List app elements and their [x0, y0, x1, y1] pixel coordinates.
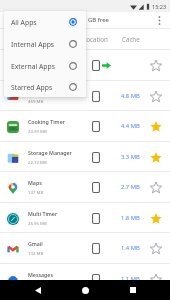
button[interactable]: Starred Apps [4, 77, 86, 97]
button[interactable]: All Apps [4, 11, 86, 33]
staticText: Maps [28, 179, 42, 186]
staticText: 2.7 MB [121, 183, 140, 191]
staticText: Internal Apps [11, 40, 55, 49]
staticText: Gmail [28, 240, 43, 247]
staticText: 137 MB [28, 189, 44, 195]
button[interactable]: Dark Photos [0, 81, 170, 111]
staticText: 1.1 MB [121, 275, 140, 283]
staticText: 3.3 MB [121, 153, 140, 161]
staticText: 12.82 GB free [71, 16, 109, 24]
staticText: 132 MB [28, 250, 44, 256]
staticText: External Apps [11, 62, 55, 71]
button[interactable]: Gmail [0, 233, 170, 263]
staticText: 4.8 MB [121, 92, 140, 100]
staticText: 22.72 MB [28, 159, 47, 165]
button[interactable]: Star [147, 118, 164, 135]
staticText: 26.96 MB [28, 220, 47, 226]
staticText: Cache [122, 35, 140, 43]
staticText: Starred Apps [11, 83, 53, 92]
button[interactable]: Maps [0, 172, 170, 202]
button[interactable]: Star [147, 57, 164, 74]
button[interactable]: Internal Apps [4, 33, 86, 55]
button[interactable]: Star [147, 149, 164, 166]
staticText: Dark Photos [28, 88, 60, 95]
button[interactable]: Recents [123, 280, 143, 300]
staticText: 4.4 MB [121, 122, 140, 130]
button[interactable]: Messages [0, 264, 170, 294]
button[interactable]: Star [147, 179, 164, 196]
button[interactable]: Star [147, 210, 164, 227]
button[interactable]: Cooking Timer [0, 111, 170, 141]
button[interactable]: Storage Manager [0, 142, 170, 172]
staticText: 23.99 MB [28, 128, 47, 134]
staticText: Multi Timer [28, 210, 58, 217]
staticText: Cooking Timer [28, 118, 65, 125]
button[interactable]: Star [147, 271, 164, 288]
staticText: 469 MB [28, 67, 44, 73]
staticText: Location [83, 35, 108, 43]
staticText: Messages [28, 271, 53, 278]
staticText: All Apps [11, 18, 37, 27]
button[interactable]: Star [147, 240, 164, 257]
button[interactable]: More options [151, 12, 167, 28]
button[interactable]: Dark Photos [0, 50, 170, 80]
staticText: Storage Manager [28, 149, 72, 156]
staticText: 1.4 MB [121, 244, 140, 252]
button[interactable]: Back [28, 280, 48, 300]
button[interactable]: Home [75, 280, 95, 300]
button[interactable]: Star [147, 88, 164, 105]
staticText: 15:23 [152, 3, 167, 10]
button[interactable]: Multi Timer [0, 203, 170, 233]
staticText: 469 MB [28, 98, 44, 104]
staticText: 1.8 MB [121, 214, 140, 222]
button[interactable]: External Apps [4, 55, 86, 77]
